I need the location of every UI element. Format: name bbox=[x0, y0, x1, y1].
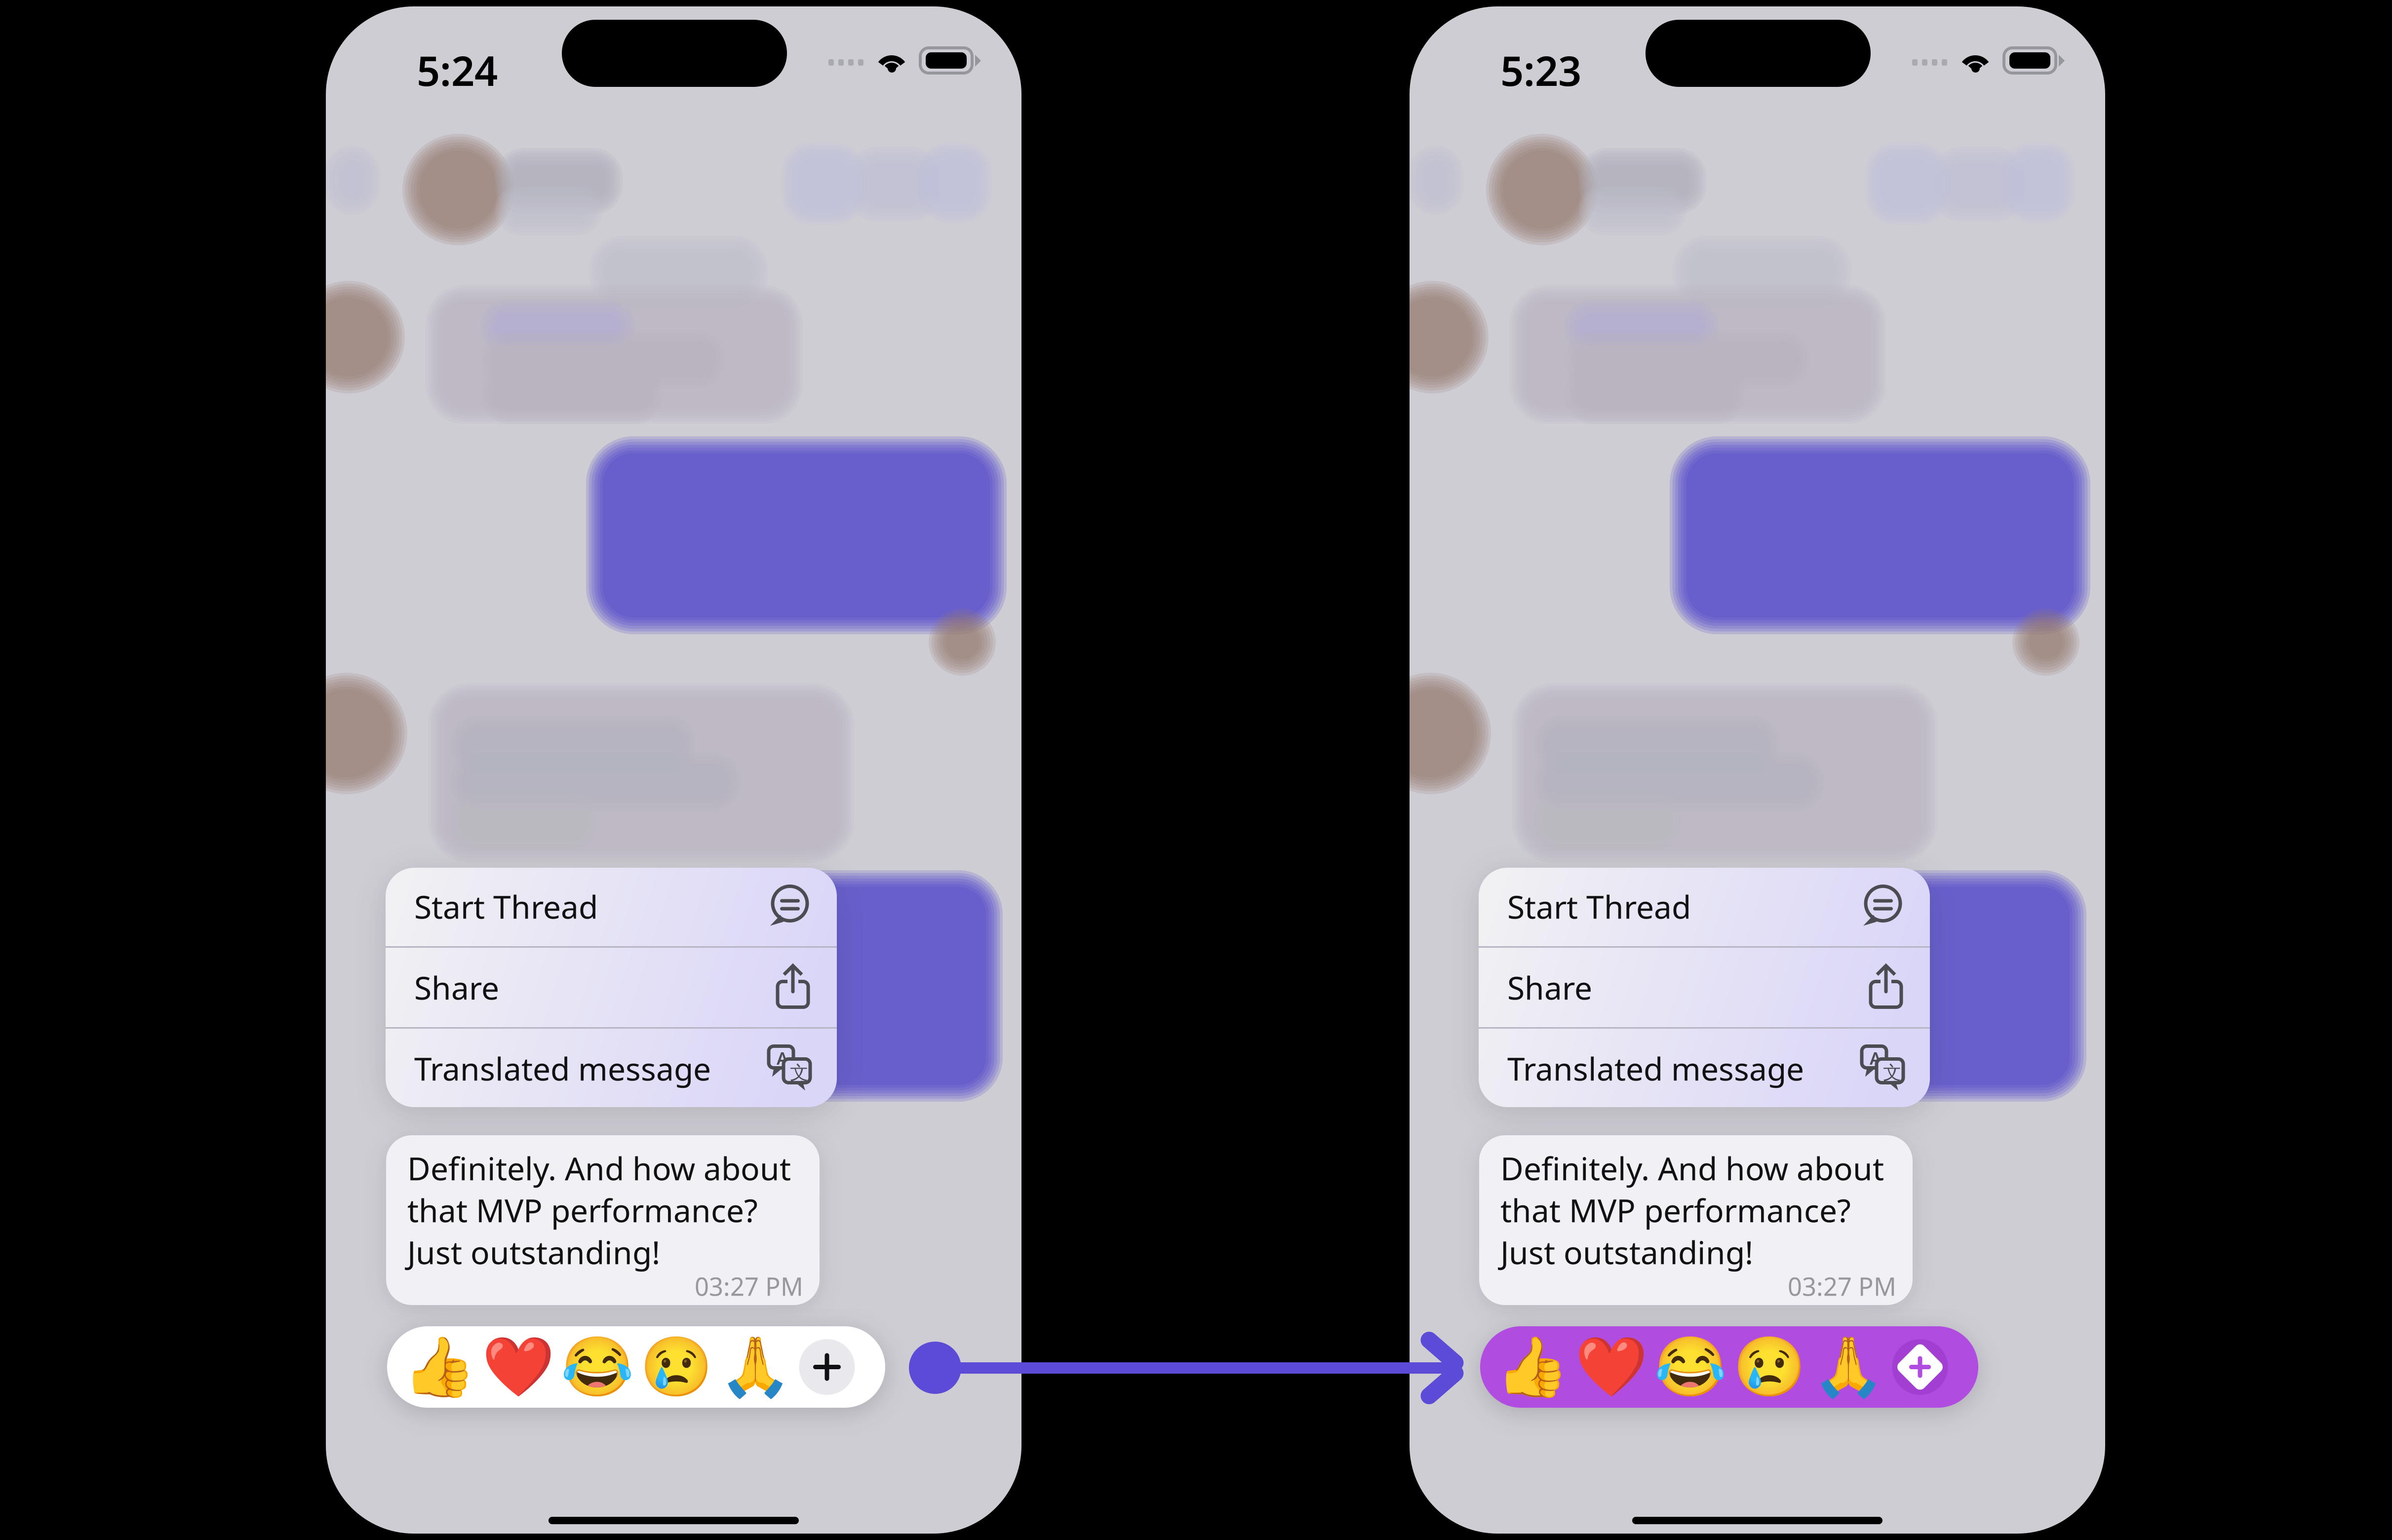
button[interactable]: Translated message bbox=[386, 1029, 837, 1108]
button[interactable]: React bbox=[400, 1326, 479, 1408]
button[interactable]: React bbox=[637, 1326, 716, 1408]
staticText: 😂 bbox=[561, 1334, 634, 1400]
staticText: Start Thread bbox=[414, 885, 598, 927]
staticText: 👍 bbox=[1496, 1334, 1569, 1400]
button[interactable]: React bbox=[1651, 1326, 1730, 1408]
staticText: ❤️ bbox=[1575, 1334, 1648, 1400]
staticText: ❤️ bbox=[482, 1334, 555, 1400]
staticText: Translated message bbox=[414, 1047, 711, 1089]
button[interactable]: React bbox=[1572, 1326, 1651, 1408]
staticText: Definitely. And how about that MVP perfo… bbox=[407, 1147, 791, 1273]
staticText: A bbox=[777, 1047, 788, 1069]
button[interactable]: Translated message bbox=[1479, 1029, 1930, 1108]
staticText: 文 bbox=[1883, 1061, 1901, 1084]
button[interactable]: React bbox=[479, 1326, 558, 1408]
staticText: 🙏 bbox=[1812, 1334, 1885, 1400]
staticText: 😂 bbox=[1654, 1334, 1727, 1400]
staticText: 03:27 PM bbox=[695, 1270, 803, 1303]
staticText: 😢 bbox=[1733, 1334, 1806, 1400]
staticText: Start Thread bbox=[1507, 885, 1691, 927]
button[interactable]: React bbox=[1730, 1326, 1809, 1408]
staticText: Translated message bbox=[1507, 1047, 1804, 1089]
button[interactable]: Share bbox=[1479, 948, 1930, 1027]
staticText: 😢 bbox=[640, 1334, 713, 1400]
staticText: Share bbox=[414, 966, 499, 1008]
button[interactable]: More reactions bbox=[1888, 1326, 1952, 1408]
staticText: 03:27 PM bbox=[1788, 1270, 1896, 1303]
button[interactable]: React bbox=[1493, 1326, 1572, 1408]
button[interactable]: Share bbox=[386, 948, 837, 1027]
staticText: 👍 bbox=[403, 1334, 476, 1400]
staticText: 5:23 bbox=[1500, 43, 1581, 97]
staticText: A bbox=[1870, 1047, 1881, 1069]
staticText: 5:24 bbox=[417, 43, 498, 97]
button[interactable]: React bbox=[558, 1326, 637, 1408]
button[interactable]: Start Thread bbox=[386, 867, 837, 946]
staticText: Definitely. And how about that MVP perfo… bbox=[1500, 1147, 1884, 1273]
button[interactable]: React bbox=[716, 1326, 795, 1408]
button[interactable]: React bbox=[1809, 1326, 1888, 1408]
staticText: 文 bbox=[790, 1061, 808, 1084]
button[interactable]: Start Thread bbox=[1479, 867, 1930, 946]
staticText: 🙏 bbox=[719, 1334, 792, 1400]
button[interactable]: More reactions bbox=[795, 1326, 859, 1408]
staticText: Share bbox=[1507, 966, 1592, 1008]
